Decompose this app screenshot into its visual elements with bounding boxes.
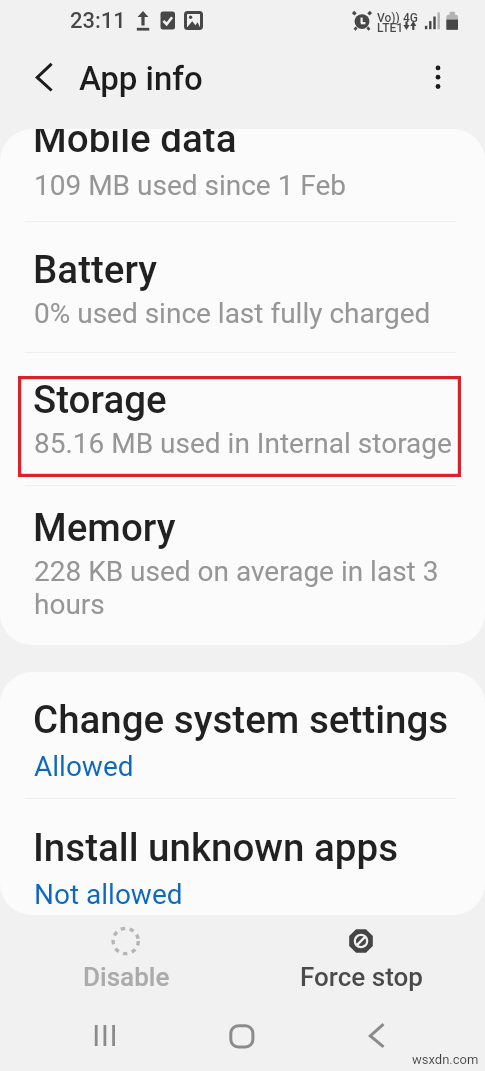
button[interactable]: Recent apps [43, 1010, 167, 1071]
staticText: Not allowed [34, 878, 183, 911]
button[interactable]: Back [314, 1010, 438, 1071]
staticText: 4G [403, 11, 418, 25]
button[interactable]: Storage [0, 377, 485, 422]
staticText: Install unknown apps [33, 825, 399, 870]
button[interactable]: Force stop [242, 915, 485, 1010]
staticText: App info [79, 59, 203, 98]
staticText: 85.16 MB used in Internal storage [34, 427, 452, 460]
staticText: Battery [33, 247, 158, 292]
button[interactable]: Mobile data [0, 129, 485, 161]
staticText: 109 MB used since 1 Feb [34, 169, 347, 202]
button[interactable]: Install unknown apps [0, 825, 485, 870]
staticText: wsxdn.com [412, 1052, 479, 1067]
button[interactable]: Battery [0, 247, 485, 292]
button[interactable]: Change system settings [0, 697, 485, 742]
button[interactable]: Home [179, 1010, 303, 1071]
staticText: Memory [33, 505, 176, 550]
staticText: Force stop [300, 962, 423, 992]
button[interactable]: More options [414, 53, 462, 101]
staticText: Allowed [34, 750, 134, 783]
staticText: Change system settings [33, 697, 449, 742]
staticText: Vo)) [377, 11, 400, 25]
staticText: LTE1 [377, 21, 404, 35]
staticText: 23:11 [70, 8, 126, 34]
button[interactable]: Disable [0, 915, 243, 1010]
staticText: 228 KB used on average in last 3 hours [34, 555, 439, 621]
staticText: Mobile data [33, 129, 237, 161]
staticText: 0% used since last fully charged [34, 297, 431, 330]
staticText: Disable [83, 962, 170, 992]
button[interactable]: Memory [0, 505, 485, 550]
staticText: Storage [33, 377, 167, 422]
button[interactable]: Navigate up [20, 53, 68, 101]
